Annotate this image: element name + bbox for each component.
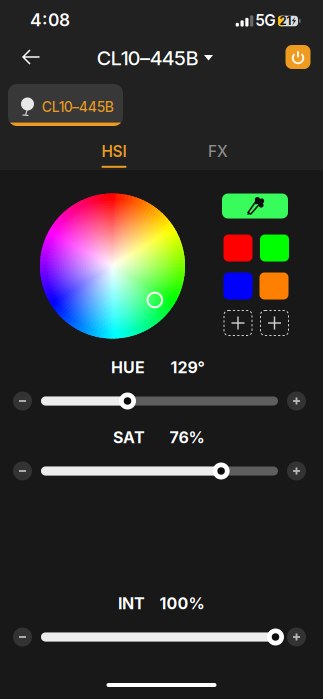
staticText: HUE bbox=[111, 358, 145, 377]
button[interactable]: Increase HUE bbox=[287, 391, 306, 410]
button[interactable]: Add preset bbox=[260, 310, 289, 336]
staticText: CL10–445B bbox=[97, 46, 198, 70]
staticText: 100% bbox=[159, 594, 204, 613]
button[interactable]: CL10–445B bbox=[97, 47, 213, 69]
button[interactable]: Decrease SAT bbox=[13, 461, 32, 480]
staticText: INT bbox=[118, 594, 145, 613]
staticText: 76% bbox=[169, 428, 204, 447]
button[interactable]: Back bbox=[22, 49, 41, 65]
button[interactable]: Decrease INT bbox=[13, 627, 32, 646]
button[interactable]: Eyedropper bbox=[222, 193, 288, 218]
staticText: 21 bbox=[279, 14, 291, 28]
staticText: FX bbox=[208, 142, 228, 161]
button[interactable]: Power bbox=[285, 45, 310, 69]
button[interactable]: Increase SAT bbox=[287, 461, 306, 480]
button[interactable]: Decrease HUE bbox=[13, 391, 32, 410]
button[interactable]: Increase INT bbox=[287, 627, 306, 646]
staticText: HSI bbox=[101, 142, 126, 161]
staticText: CL10–445B bbox=[42, 98, 114, 115]
button[interactable]: CL10–445B bbox=[8, 84, 123, 126]
staticText: 4:08 bbox=[30, 9, 70, 30]
button[interactable]: Green preset bbox=[260, 234, 289, 261]
button[interactable]: Orange preset bbox=[259, 272, 288, 299]
button[interactable]: Add preset bbox=[223, 310, 252, 336]
staticText: 129° bbox=[170, 358, 204, 377]
button[interactable]: FX bbox=[173, 140, 263, 170]
staticText: 5G bbox=[255, 11, 275, 30]
staticText: SAT bbox=[113, 428, 145, 447]
button[interactable]: Red preset bbox=[223, 234, 252, 261]
button[interactable]: HSI bbox=[69, 140, 159, 170]
button[interactable]: Blue preset bbox=[223, 272, 252, 299]
